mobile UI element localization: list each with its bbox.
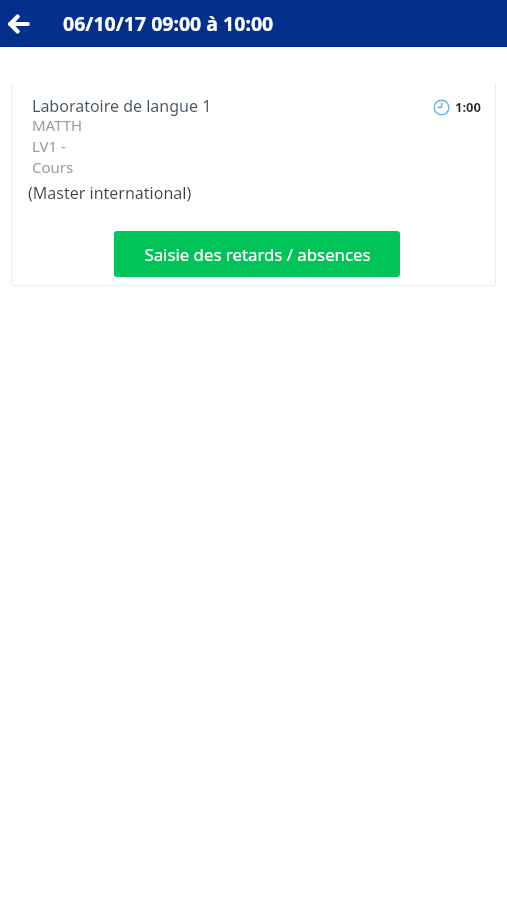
button[interactable]: Back: [0, 0, 37, 47]
staticText: (Master international): [28, 182, 192, 204]
staticText: 06/10/17 09:00 à 10:00: [63, 10, 274, 37]
staticText: MATTH: [32, 115, 83, 135]
button[interactable]: Saisie des retards / absences: [114, 231, 400, 277]
staticText: 1:00: [455, 98, 481, 116]
staticText: Cours: [32, 157, 74, 177]
staticText: Saisie des retards / absences: [144, 243, 371, 266]
staticText: Laboratoire de langue 1: [32, 95, 212, 117]
staticText: LV1 -: [32, 136, 66, 156]
